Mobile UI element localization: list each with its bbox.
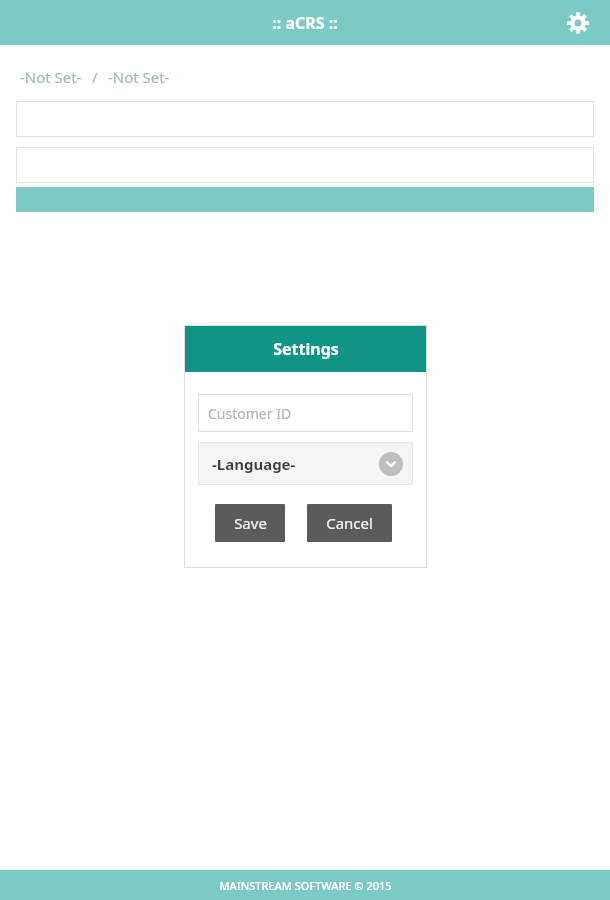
button[interactable]: Cancel bbox=[307, 504, 392, 542]
staticText: -Language- bbox=[212, 454, 296, 474]
staticText: Customer ID bbox=[208, 404, 292, 423]
button[interactable]: Save bbox=[215, 504, 285, 542]
staticText: / bbox=[92, 67, 98, 87]
staticText: -Not Set- bbox=[20, 67, 82, 87]
button[interactable] bbox=[16, 101, 594, 137]
button[interactable]: -Language- bbox=[198, 442, 413, 485]
button[interactable]: Settings bbox=[558, 3, 598, 43]
staticText: Settings bbox=[273, 338, 339, 360]
button[interactable]: Customer ID bbox=[198, 394, 413, 432]
staticText: :: aCRS :: bbox=[272, 12, 338, 34]
staticText: Cancel bbox=[326, 513, 373, 533]
staticText: MAINSTREAM SOFTWARE © 2015 bbox=[219, 878, 392, 893]
staticText: -Not Set- bbox=[108, 67, 170, 87]
staticText: Save bbox=[234, 513, 267, 533]
button[interactable] bbox=[16, 147, 594, 183]
